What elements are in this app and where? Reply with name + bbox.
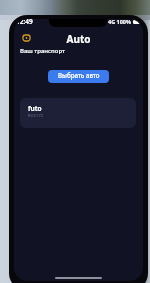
staticText: Auto [14,32,143,46]
staticText: futo [28,104,42,113]
staticText: Ваш транспорт [20,47,65,55]
staticText: Выбрать авто [58,71,100,79]
staticText: 12:49 [16,19,33,26]
button[interactable]: Profile [19,31,33,45]
button[interactable]: Выбрать авто [48,70,109,83]
staticText: 4G 100% [108,19,131,25]
button[interactable]: futo [20,98,136,128]
staticText: ROC172 [28,113,44,118]
